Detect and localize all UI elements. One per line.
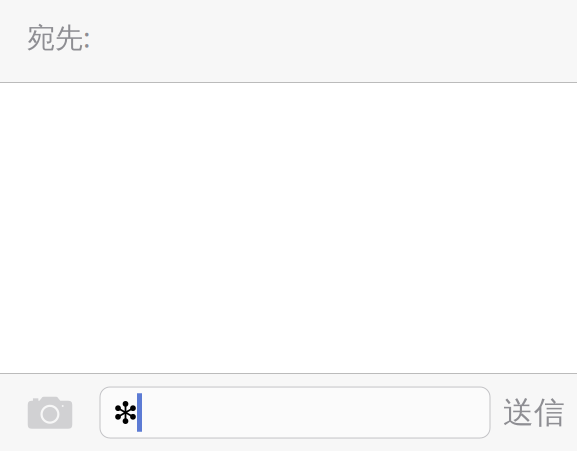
staticText: 宛先: <box>27 18 91 56</box>
button[interactable]: 送信 <box>490 374 577 451</box>
button[interactable]: Camera <box>0 374 100 451</box>
staticText: 送信 <box>503 394 565 431</box>
button[interactable]: Message <box>100 387 490 438</box>
button[interactable]: 宛先: <box>0 0 577 82</box>
